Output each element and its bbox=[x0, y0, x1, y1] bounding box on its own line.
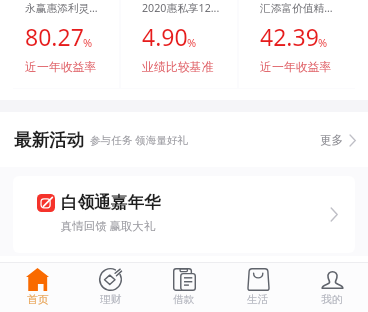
button[interactable]: 更多 bbox=[312, 125, 364, 156]
other: 我的 bbox=[321, 268, 344, 291]
staticText: 参与任务 领海量好礼 bbox=[90, 133, 189, 147]
staticText: % bbox=[187, 35, 197, 50]
other: 首页 bbox=[26, 268, 49, 291]
staticText: 4.90 bbox=[142, 21, 188, 52]
staticText: 业绩比较基准 bbox=[142, 60, 214, 75]
button[interactable]: 2020惠私享12... bbox=[130, 0, 237, 89]
staticText: 借款 bbox=[173, 293, 195, 306]
button[interactable]: 汇添富价值精... bbox=[248, 0, 355, 89]
staticText: 永赢惠添利灵... bbox=[25, 1, 98, 16]
staticText: 白领通嘉年华 bbox=[61, 192, 161, 213]
button[interactable]: 理财 bbox=[74, 262, 147, 312]
staticText: 80.27 bbox=[25, 21, 84, 52]
staticText: 理财 bbox=[100, 293, 122, 306]
staticText: 2020惠私享12... bbox=[142, 1, 220, 16]
staticText: 近一年收益率 bbox=[260, 60, 332, 75]
staticText: 生活 bbox=[247, 293, 269, 306]
staticText: 更多 bbox=[320, 133, 344, 148]
button[interactable]: 生活 bbox=[221, 262, 295, 312]
button[interactable]: 我的 bbox=[295, 262, 368, 312]
button[interactable]: 首页 bbox=[1, 262, 74, 312]
staticText: 我的 bbox=[321, 293, 343, 306]
staticText: 近一年收益率 bbox=[25, 60, 97, 75]
staticText: 42.39 bbox=[260, 21, 319, 52]
staticText: 最新活动 bbox=[14, 129, 84, 151]
staticText: 首页 bbox=[27, 293, 49, 306]
button[interactable]: 白领通嘉年华 bbox=[13, 176, 355, 253]
button[interactable]: 永赢惠添利灵... bbox=[13, 0, 119, 89]
other: 生活 bbox=[247, 268, 270, 291]
other: 理财 bbox=[99, 268, 122, 291]
staticText: % bbox=[83, 35, 93, 50]
staticText: 汇添富价值精... bbox=[260, 1, 333, 16]
staticText: 真情回馈 赢取大礼 bbox=[61, 218, 156, 234]
other: 借款 bbox=[173, 268, 196, 291]
staticText: % bbox=[318, 35, 328, 50]
button[interactable]: 借款 bbox=[147, 262, 221, 312]
